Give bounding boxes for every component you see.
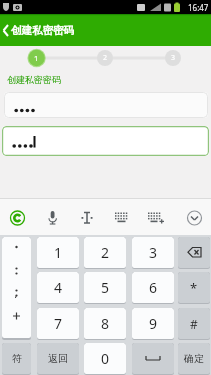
staticText: 1 <box>34 53 39 63</box>
button[interactable]: # <box>178 308 210 340</box>
button[interactable]: 9 <box>132 308 174 340</box>
staticText: 7 <box>54 314 63 333</box>
button[interactable] <box>178 237 210 269</box>
staticText: 确定 <box>184 352 204 365</box>
staticText: 2 <box>101 243 110 262</box>
button[interactable]: * <box>178 272 210 304</box>
staticText: 0 <box>101 349 110 368</box>
staticText: 6 <box>149 278 158 297</box>
button[interactable]: 8 <box>84 308 126 340</box>
button[interactable]: 确定 <box>178 343 210 375</box>
button[interactable] <box>2 126 209 156</box>
staticText: 创建私密密码 <box>11 24 74 37</box>
staticText: 返回 <box>48 352 68 365</box>
staticText: 1 <box>54 243 63 262</box>
staticText: 2 <box>103 53 108 63</box>
staticText: 8 <box>101 314 110 333</box>
button[interactable]: 符 <box>2 343 31 375</box>
button[interactable]: 6 <box>132 272 174 304</box>
staticText: 符 <box>12 352 22 365</box>
button[interactable]: 7 <box>37 308 79 340</box>
button[interactable]: 3 <box>132 237 174 269</box>
button[interactable]: 创建私密密码 <box>0 14 211 46</box>
staticText: 9 <box>149 314 158 333</box>
staticText: * <box>190 279 198 297</box>
button[interactable] <box>132 343 174 375</box>
staticText: 5 <box>101 278 110 297</box>
staticText: 16:47 <box>188 2 209 13</box>
staticText: 3 <box>149 243 158 262</box>
button[interactable] <box>4 92 208 118</box>
button[interactable]: 返回 <box>37 343 79 375</box>
button[interactable]: 2 <box>84 237 126 269</box>
staticText: # <box>190 316 198 332</box>
staticText: 3 <box>171 53 176 63</box>
button[interactable]: 0 <box>84 343 126 375</box>
staticText: 4 <box>54 278 63 297</box>
button[interactable]: 1 <box>37 237 79 269</box>
button[interactable]: 5 <box>84 272 126 304</box>
button[interactable] <box>2 237 31 340</box>
staticText: 创建私密密码 <box>7 74 61 85</box>
button[interactable]: 4 <box>37 272 79 304</box>
